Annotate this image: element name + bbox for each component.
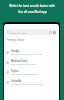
button[interactable]: Menu [6,29,57,35]
staticText: New jobs matching your profile [11,83,44,86]
other: Menu [7,31,9,33]
staticText: Google [11,49,20,52]
button[interactable]: Google [4,47,59,57]
staticText: Your weekly design update [11,73,39,76]
staticText: LinkedIn [11,79,22,82]
staticText: Primary inbox [6,38,24,42]
staticText: Search in mail [10,31,26,34]
staticText: the all-new Mail app [18,10,47,14]
staticText: Top stories for you today [11,63,37,66]
staticText: Security alert for your account [11,53,43,56]
button[interactable]: Account [53,31,56,34]
staticText: Write the best emails faster with [9,4,55,8]
button[interactable]: Medium Daily [4,57,59,67]
staticText: Medium Daily [11,59,28,62]
button[interactable]: Figma [4,67,59,77]
staticText: Figma [11,69,19,72]
button[interactable]: LinkedIn [4,77,59,87]
other: Filter [49,31,52,34]
